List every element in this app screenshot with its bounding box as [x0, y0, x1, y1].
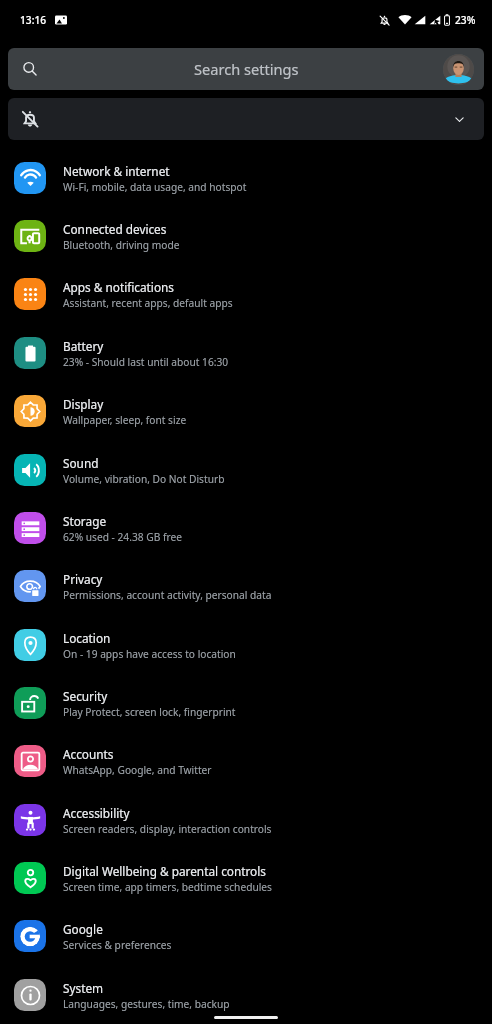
staticText: Accounts — [63, 746, 114, 762]
staticText: Apps & notifications — [63, 279, 174, 295]
staticText: Search settings — [194, 59, 299, 79]
staticText: Accessibility — [63, 805, 130, 821]
staticText: Wallpaper, sleep, font size — [63, 413, 187, 427]
button[interactable]: Accounts — [0, 732, 492, 790]
staticText: Sound — [63, 455, 99, 471]
staticText: Bluetooth, driving mode — [63, 238, 180, 252]
staticText: Volume, vibration, Do Not Disturb — [63, 472, 225, 486]
staticText: Screen time, app timers, bedtime schedul… — [63, 880, 272, 894]
button[interactable]: Network & internet — [0, 149, 492, 207]
staticText: Security — [63, 688, 108, 704]
button[interactable]: Connected devices — [0, 207, 492, 265]
staticText: 13:16 — [20, 13, 47, 27]
staticText: Google — [63, 921, 103, 937]
button[interactable] — [8, 98, 484, 140]
button[interactable]: Google — [0, 907, 492, 965]
staticText: Storage — [63, 513, 107, 529]
button[interactable]: Privacy — [0, 557, 492, 615]
staticText: Digital Wellbeing & parental controls — [63, 863, 266, 879]
staticText: Battery — [63, 338, 104, 354]
staticText: Permissions, account activity, personal … — [63, 588, 272, 602]
staticText: Display — [63, 396, 104, 412]
staticText: Languages, gestures, time, backup — [63, 997, 230, 1011]
staticText: Screen readers, display, interaction con… — [63, 822, 272, 836]
staticText: WhatsApp, Google, and Twitter — [63, 763, 212, 777]
staticText: Wi-Fi, mobile, data usage, and hotspot — [63, 180, 247, 194]
button[interactable]: Search settings — [8, 48, 484, 90]
staticText: Assistant, recent apps, default apps — [63, 296, 233, 310]
button[interactable]: Digital Wellbeing & parental controls — [0, 849, 492, 907]
button[interactable]: Security — [0, 674, 492, 732]
button[interactable]: Apps & notifications — [0, 265, 492, 323]
staticText: 62% used - 24.38 GB free — [63, 530, 182, 544]
button[interactable]: System — [0, 966, 492, 1024]
staticText: Play Protect, screen lock, fingerprint — [63, 705, 236, 719]
staticText: Services & preferences — [63, 938, 172, 952]
button[interactable]: Location — [0, 616, 492, 674]
button[interactable]: Accessibility — [0, 791, 492, 849]
staticText: Network & internet — [63, 163, 170, 179]
staticText: Privacy — [63, 571, 103, 587]
staticText: Connected devices — [63, 221, 167, 237]
staticText: System — [63, 980, 104, 996]
button[interactable]: Storage — [0, 499, 492, 557]
staticText: On - 19 apps have access to location — [63, 647, 236, 661]
staticText: 23% - Should last until about 16:30 — [63, 355, 229, 369]
button[interactable]: Display — [0, 382, 492, 440]
staticText: 23% — [455, 13, 476, 27]
button[interactable]: Account — [443, 54, 474, 85]
staticText: Location — [63, 630, 111, 646]
button[interactable]: Sound — [0, 441, 492, 499]
button[interactable]: Battery — [0, 324, 492, 382]
